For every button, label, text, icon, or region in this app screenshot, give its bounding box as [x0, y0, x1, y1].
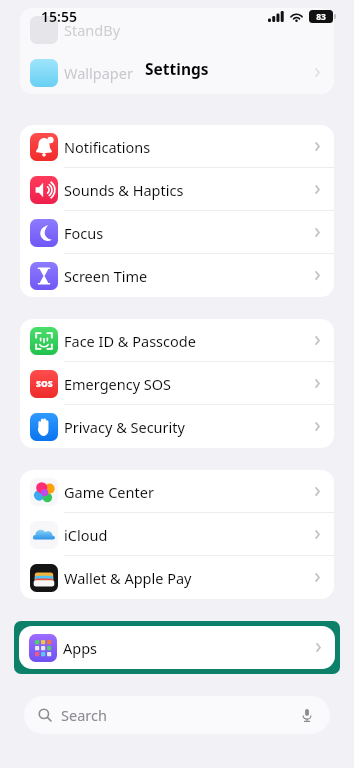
staticText: SOS: [36, 378, 53, 390]
staticText: Settings: [145, 58, 209, 79]
staticText: Game Center: [64, 482, 313, 502]
staticText: Notifications: [64, 137, 313, 157]
button[interactable]: SOS: [20, 362, 334, 405]
button[interactable]: Privacy & Security: [20, 405, 334, 448]
button[interactable]: Notifications: [20, 125, 334, 168]
button[interactable]: Search: [24, 696, 330, 734]
staticText: Sounds & Haptics: [64, 180, 313, 200]
staticText: Focus: [64, 223, 313, 243]
button[interactable]: Voice search: [298, 706, 316, 724]
button[interactable]: Sounds & Haptics: [20, 168, 334, 211]
staticText: 83: [316, 11, 326, 23]
staticText: Screen Time: [64, 266, 313, 286]
button[interactable]: Wallet & Apple Pay: [20, 556, 334, 599]
button[interactable]: Apps: [19, 626, 335, 669]
button[interactable]: Focus: [20, 211, 334, 254]
staticText: Wallpaper: [64, 63, 133, 83]
button[interactable]: Game Center: [20, 470, 334, 513]
staticText: Apps: [63, 638, 314, 658]
button[interactable]: iCloud: [20, 513, 334, 556]
staticText: Privacy & Security: [64, 417, 313, 437]
staticText: 15:55: [41, 7, 77, 26]
staticText: Wallet & Apple Pay: [64, 568, 313, 588]
staticText: Search: [61, 705, 298, 725]
staticText: Emergency SOS: [64, 374, 313, 394]
button[interactable]: Screen Time: [20, 254, 334, 297]
staticText: iCloud: [64, 525, 313, 545]
button[interactable]: Face ID & Passcode: [20, 319, 334, 362]
staticText: Face ID & Passcode: [64, 331, 313, 351]
staticText: StandBy: [64, 20, 121, 40]
